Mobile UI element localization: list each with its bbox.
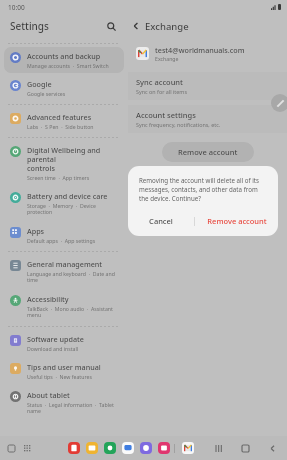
- staticText: Exchange: [145, 20, 189, 33]
- button[interactable]: Cancel: [128, 211, 194, 231]
- button[interactable]: Battery and device care: [4, 187, 124, 220]
- button[interactable]: Recent apps panel: [6, 443, 16, 453]
- button[interactable]: Back: [127, 17, 145, 35]
- button[interactable]: Remove account: [195, 211, 278, 231]
- staticText: Labs · S Pen · Side button: [27, 123, 94, 130]
- staticText: Battery and device care: [27, 191, 108, 201]
- button[interactable]: Accessibility: [4, 290, 124, 323]
- button[interactable]: My Files: [86, 442, 98, 454]
- button[interactable]: All apps: [22, 443, 32, 453]
- staticText: General management: [27, 259, 103, 269]
- staticText: Storage · Memory · Device protection: [27, 202, 96, 216]
- button[interactable]: Recents: [211, 441, 225, 455]
- staticText: Sync account: [136, 77, 183, 87]
- staticText: Apps: [27, 226, 45, 236]
- staticText: Sync frequency, notifications, etc.: [136, 121, 221, 128]
- staticText: Manage accounts · Smart Switch: [27, 62, 109, 69]
- staticText: Google services: [27, 90, 66, 97]
- staticText: Google: [27, 79, 52, 89]
- staticText: Download and install: [27, 345, 79, 352]
- button[interactable]: General management: [4, 255, 124, 288]
- staticText: About tablet: [27, 390, 70, 400]
- staticText: Removing the account will delete all of …: [139, 176, 267, 203]
- button[interactable]: Apps: [4, 222, 124, 248]
- button[interactable]: Search: [101, 16, 121, 36]
- button[interactable]: About tablet: [4, 386, 124, 419]
- button[interactable]: Gmail: [182, 442, 194, 454]
- staticText: 10:00: [8, 3, 25, 12]
- staticText: Remove account: [207, 216, 267, 226]
- button[interactable]: Google: [4, 75, 124, 101]
- staticText: Sync on for all items: [136, 88, 187, 95]
- button[interactable]: Internet: [140, 442, 152, 454]
- button[interactable]: Recorder: [68, 442, 80, 454]
- button[interactable]: Accounts and backup: [4, 47, 124, 73]
- staticText: Accessibility: [27, 294, 69, 304]
- button[interactable]: Digital Wellbeing and parental controls: [4, 141, 124, 185]
- staticText: Exchange: [155, 55, 179, 62]
- staticText: Status · Legal information · Tablet name: [27, 401, 114, 415]
- staticText: Digital Wellbeing and parental controls: [27, 145, 119, 173]
- staticText: Settings: [10, 19, 49, 33]
- staticText: Language and keyboard · Date and time: [27, 270, 115, 284]
- staticText: Cancel: [149, 216, 173, 226]
- button[interactable]: Software update: [4, 330, 124, 356]
- button[interactable]: Advanced features: [4, 108, 124, 134]
- button[interactable]: Home: [238, 441, 252, 455]
- staticText: Screen time · App timers: [27, 174, 90, 181]
- staticText: Tips and user manual: [27, 362, 101, 372]
- button[interactable]: Tips and user manual: [4, 358, 124, 384]
- staticText: Useful tips · New features: [27, 373, 92, 380]
- button[interactable]: Remove account: [162, 142, 254, 162]
- button[interactable]: Sync account: [128, 72, 287, 100]
- staticText: Account settings: [136, 110, 196, 120]
- button[interactable]: Account settings: [128, 105, 287, 133]
- staticText: TalkBack · Mono audio · Assistant menu: [27, 305, 113, 319]
- staticText: Software update: [27, 334, 84, 344]
- staticText: Advanced features: [27, 112, 92, 122]
- button[interactable]: test4@worldmanuals.com: [128, 41, 287, 68]
- button[interactable]: Edit: [271, 94, 287, 112]
- staticText: Accounts and backup: [27, 51, 101, 61]
- button[interactable]: Messages: [122, 442, 134, 454]
- button[interactable]: Camera: [158, 442, 170, 454]
- button[interactable]: Phone: [104, 442, 116, 454]
- staticText: Remove account: [178, 147, 238, 157]
- staticText: test4@worldmanuals.com: [155, 45, 245, 55]
- staticText: Default apps · App settings: [27, 237, 96, 244]
- button[interactable]: Back: [265, 441, 279, 455]
